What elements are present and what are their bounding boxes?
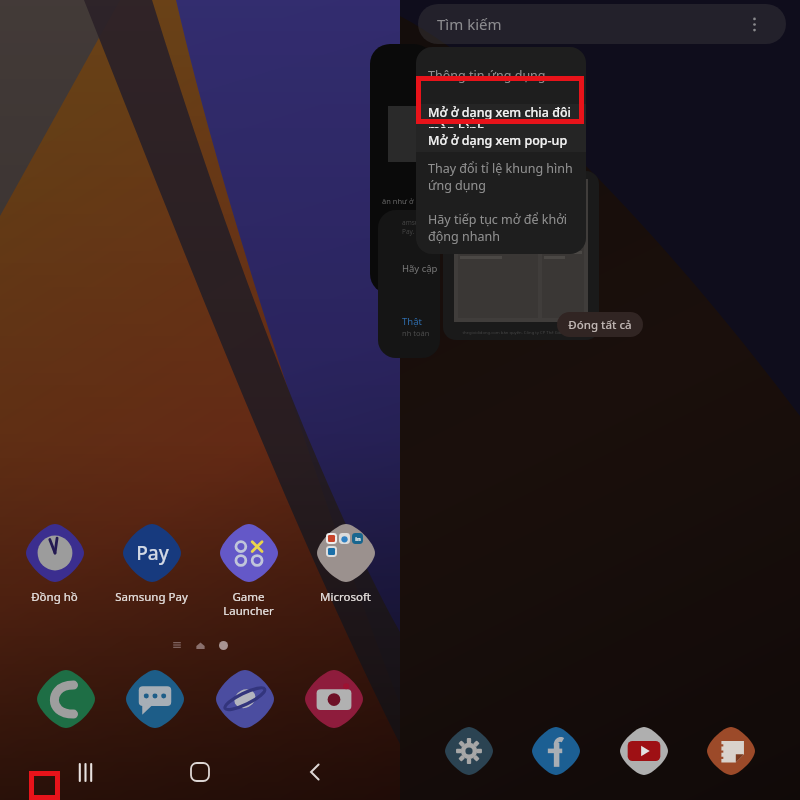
button[interactable]: Notes bbox=[707, 727, 755, 775]
staticText: Thật bbox=[402, 315, 422, 328]
staticText: Thông tin ứng dụng bbox=[428, 67, 574, 84]
staticText: Tìm kiếm bbox=[437, 14, 741, 34]
staticText: Đồng hồ bbox=[6, 589, 103, 605]
button[interactable] bbox=[370, 44, 434, 294]
button[interactable]: Internet bbox=[216, 670, 274, 728]
staticText: Game Launcher bbox=[200, 589, 297, 618]
button[interactable]: Phone bbox=[37, 670, 95, 728]
button[interactable]: Đồng hồ bbox=[6, 524, 103, 605]
button[interactable]: Game Launcher bbox=[200, 524, 297, 618]
button[interactable]: Home bbox=[170, 744, 230, 800]
button[interactable]: Tìm kiếm bbox=[418, 4, 786, 44]
staticText: Đóng tất cả bbox=[568, 317, 632, 333]
staticText: ân như ở bất bbox=[382, 196, 428, 206]
staticText: Mở ở dạng xem pop-up bbox=[428, 132, 574, 149]
button[interactable]: Pay bbox=[103, 524, 200, 605]
button[interactable]: amsung Pay. bbox=[378, 210, 440, 358]
button[interactable]: Mở ở dạng xem pop-up bbox=[416, 128, 586, 152]
staticText: nh toán bbox=[402, 328, 430, 338]
staticText: Hãy tiếp tục mở để khởi động nhanh bbox=[428, 211, 574, 244]
staticText: thegioididong.com bản quyền. Công ty CP … bbox=[443, 330, 599, 336]
button[interactable]: in bbox=[297, 524, 394, 605]
staticText: Thay đổi tỉ lệ khung hình ứng dụng bbox=[428, 160, 574, 193]
button[interactable]: Facebook bbox=[532, 727, 580, 775]
button[interactable]: More options bbox=[741, 11, 767, 37]
staticText: Pay bbox=[136, 540, 169, 566]
button[interactable]: YouTube bbox=[620, 727, 668, 775]
button[interactable]: Settings bbox=[445, 727, 493, 775]
button[interactable]: Recents bbox=[55, 744, 115, 800]
button[interactable]: Đóng tất cả bbox=[557, 312, 643, 337]
button[interactable]: thegioididong.com bản quyền. Công ty CP … bbox=[443, 171, 599, 340]
button[interactable]: Mở ở dạng xem chia đôi màn hình bbox=[416, 104, 586, 128]
staticText: Samsung Pay bbox=[103, 589, 200, 605]
staticText: amsung Pay. bbox=[402, 218, 440, 236]
staticText: Hãy cập bbox=[402, 262, 438, 275]
staticText: in bbox=[355, 535, 361, 543]
button[interactable]: Back bbox=[285, 744, 345, 800]
button[interactable]: Thông tin ứng dụng bbox=[416, 47, 586, 104]
staticText: Mở ở dạng xem chia đôi màn hình bbox=[428, 104, 574, 128]
button[interactable]: Thay đổi tỉ lệ khung hình ứng dụng bbox=[416, 152, 586, 201]
button[interactable]: Camera bbox=[305, 670, 363, 728]
button[interactable]: Messages bbox=[126, 670, 184, 728]
staticText: Microsoft bbox=[297, 589, 394, 605]
button[interactable]: Hãy tiếp tục mở để khởi động nhanh bbox=[416, 201, 586, 254]
